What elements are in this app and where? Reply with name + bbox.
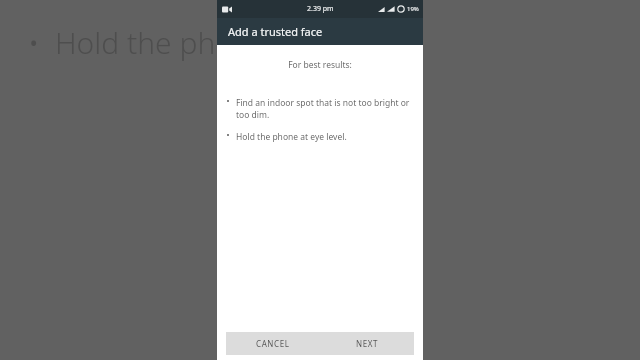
staticText: Add a trusted face [228, 24, 323, 39]
staticText: 19% [407, 5, 419, 13]
staticText: Find an indoor spot that is not too brig… [236, 97, 415, 121]
staticText: • Hold the pho [28, 22, 233, 63]
staticText: Hold the phone at eye level. [236, 131, 347, 143]
button[interactable]: NEXT [320, 332, 414, 355]
button[interactable]: CANCEL [226, 332, 320, 355]
staticText: 2.39 pm [307, 4, 334, 14]
staticText: CANCEL [256, 338, 290, 349]
staticText: NEXT [356, 338, 379, 349]
staticText: For best results: [217, 59, 423, 71]
